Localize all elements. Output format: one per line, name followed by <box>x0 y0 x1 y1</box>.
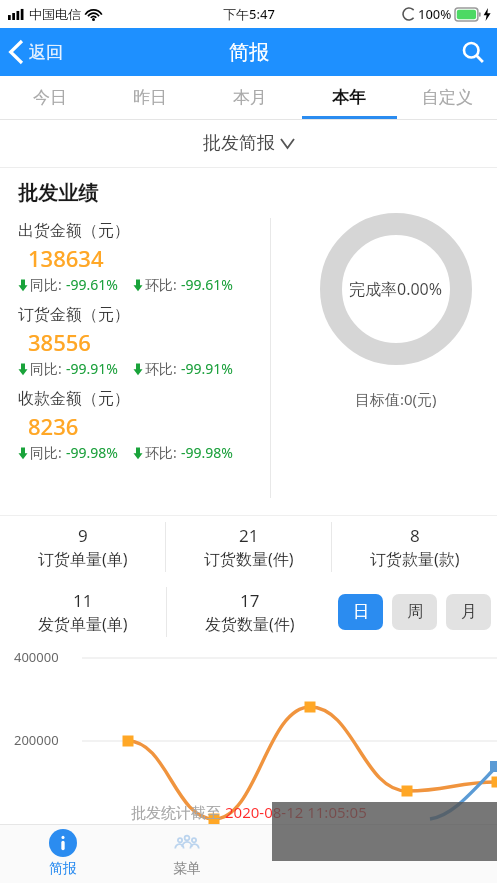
staticText: 同比: <box>30 443 66 462</box>
button[interactable]: 周 <box>392 594 437 630</box>
staticText: -99.98% <box>181 443 233 462</box>
staticText: 100% <box>418 5 452 23</box>
staticText: 200000 <box>14 731 59 749</box>
staticText: 自定义 <box>422 87 473 108</box>
staticText: 17 <box>240 589 260 612</box>
staticText: 9 <box>78 524 88 547</box>
staticText: 出货金额（元） <box>18 221 130 241</box>
staticText: 昨日 <box>133 87 167 108</box>
button[interactable]: 菜单 <box>125 824 249 883</box>
staticText: 同比: <box>30 359 66 378</box>
staticText: 月 <box>461 602 477 622</box>
button[interactable]: 本月 <box>200 76 299 119</box>
other: 简报 <box>49 829 77 857</box>
staticText: -99.61% <box>181 275 233 294</box>
staticText: 目标值:0(元) <box>355 389 437 409</box>
staticText: 本月 <box>233 87 267 108</box>
staticText: 环比: <box>145 359 181 378</box>
staticText: 环比: <box>145 275 181 294</box>
button[interactable]: Search <box>449 28 497 76</box>
button[interactable]: 批发简报 <box>0 120 497 167</box>
staticText: 8 <box>410 524 420 547</box>
staticText: 订货金额（元） <box>18 305 130 325</box>
staticText: 批发统计截至 <box>131 802 225 822</box>
staticText: 138634 <box>28 243 104 273</box>
staticText: 21 <box>239 524 259 547</box>
button[interactable]: 21 <box>166 516 331 578</box>
staticText: -99.91% <box>181 359 233 378</box>
button[interactable]: 自定义 <box>398 76 497 119</box>
button[interactable]: 月 <box>446 594 491 630</box>
button[interactable]: 9 <box>0 516 165 578</box>
button[interactable]: 8 <box>332 516 497 578</box>
staticText: 完成率0.00% <box>349 278 443 300</box>
staticText: 中国电信 <box>29 6 81 22</box>
button[interactable] <box>373 824 497 883</box>
staticText: 2020-08-12 11:05:05 <box>225 802 367 822</box>
staticText: 批发简报 <box>203 132 275 155</box>
staticText: 订货数量(件) <box>204 548 294 570</box>
button[interactable] <box>249 824 373 883</box>
staticText: 批发业绩 <box>18 181 98 206</box>
button[interactable]: 返回 <box>0 28 75 76</box>
staticText: 简报 <box>229 40 269 65</box>
button[interactable]: 简报 <box>0 824 125 883</box>
staticText: 周 <box>407 602 423 622</box>
staticText: -99.61% <box>66 275 118 294</box>
staticText: 环比: <box>145 443 181 462</box>
staticText: 下午5:47 <box>223 5 275 23</box>
staticText: 38556 <box>28 327 91 357</box>
button[interactable]: 昨日 <box>100 76 200 119</box>
staticText: 11 <box>73 589 93 612</box>
button[interactable]: 今日 <box>0 76 100 119</box>
staticText: 返回 <box>29 42 63 63</box>
button[interactable]: 本年 <box>299 76 398 119</box>
button[interactable]: 17 <box>167 580 332 644</box>
staticText: 日 <box>353 602 369 622</box>
staticText: -99.98% <box>66 443 118 462</box>
staticText: 订货款量(款) <box>370 548 460 570</box>
button[interactable]: 11 <box>0 580 166 644</box>
staticText: 本年 <box>332 87 366 108</box>
staticText: 8236 <box>28 411 79 441</box>
staticText: 发货单量(单) <box>38 613 128 635</box>
staticText: -99.91% <box>66 359 118 378</box>
staticText: 同比: <box>30 275 66 294</box>
staticText: 菜单 <box>173 860 201 878</box>
staticText: 发货数量(件) <box>205 613 295 635</box>
staticText: 订货单量(单) <box>38 548 128 570</box>
staticText: 今日 <box>33 87 67 108</box>
button[interactable]: 日 <box>338 594 383 630</box>
other: 菜单 <box>173 829 201 857</box>
staticText: 收款金额（元） <box>18 389 130 409</box>
staticText: 400000 <box>14 648 59 666</box>
staticText: 简报 <box>49 860 77 878</box>
